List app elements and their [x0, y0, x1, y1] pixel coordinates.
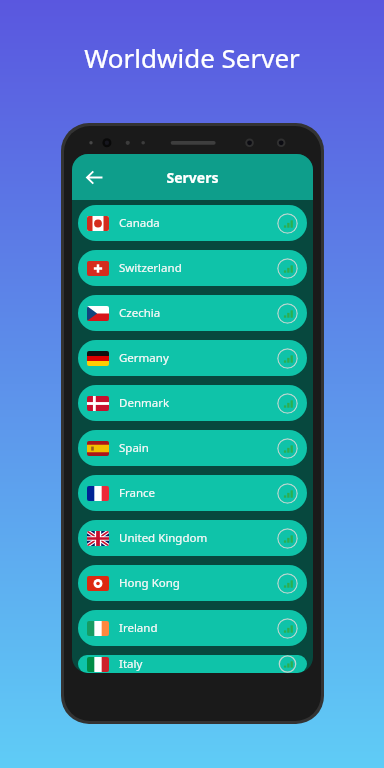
staticText: Canada [119, 215, 160, 231]
button[interactable]: Connect to Hong Kong [277, 573, 298, 594]
button[interactable]: United Kingdom [78, 520, 307, 556]
button[interactable]: Denmark [78, 385, 307, 421]
staticText: Switzerland [119, 260, 182, 276]
button[interactable]: Back [72, 154, 313, 200]
button[interactable]: Connect to Italy [277, 655, 298, 673]
button[interactable]: Czechia [78, 295, 307, 331]
staticText: Ireland [119, 620, 158, 636]
staticText: Denmark [119, 395, 170, 411]
button[interactable]: Germany [78, 340, 307, 376]
button[interactable]: Connect to Denmark [277, 393, 298, 414]
staticText: Servers [109, 168, 276, 187]
button[interactable]: Connect to United Kingdom [277, 528, 298, 549]
staticText: United Kingdom [119, 530, 208, 546]
button[interactable]: Hong Kong [78, 565, 307, 601]
button[interactable]: Connect to Ireland [277, 618, 298, 639]
staticText: Germany [119, 350, 169, 366]
button[interactable]: Canada [78, 205, 307, 241]
staticText: Worldwide Server [0, 40, 384, 75]
button[interactable]: Connect to Spain [277, 438, 298, 459]
button[interactable]: Spain [78, 430, 307, 466]
button[interactable]: France [78, 475, 307, 511]
staticText: France [119, 485, 156, 501]
button[interactable]: Connect to Germany [277, 348, 298, 369]
button[interactable]: Switzerland [78, 250, 307, 286]
button[interactable]: Back [79, 162, 109, 192]
staticText: Italy [119, 656, 143, 672]
button[interactable]: Connect to Czechia [277, 303, 298, 324]
staticText: Spain [119, 440, 149, 456]
button[interactable]: Ireland [78, 610, 307, 646]
button[interactable]: Connect to France [277, 483, 298, 504]
staticText: Czechia [119, 305, 161, 321]
button[interactable]: Italy [78, 655, 307, 673]
button[interactable]: Connect to Switzerland [277, 258, 298, 279]
staticText: Hong Kong [119, 575, 180, 591]
button[interactable]: Connect to Canada [277, 213, 298, 234]
